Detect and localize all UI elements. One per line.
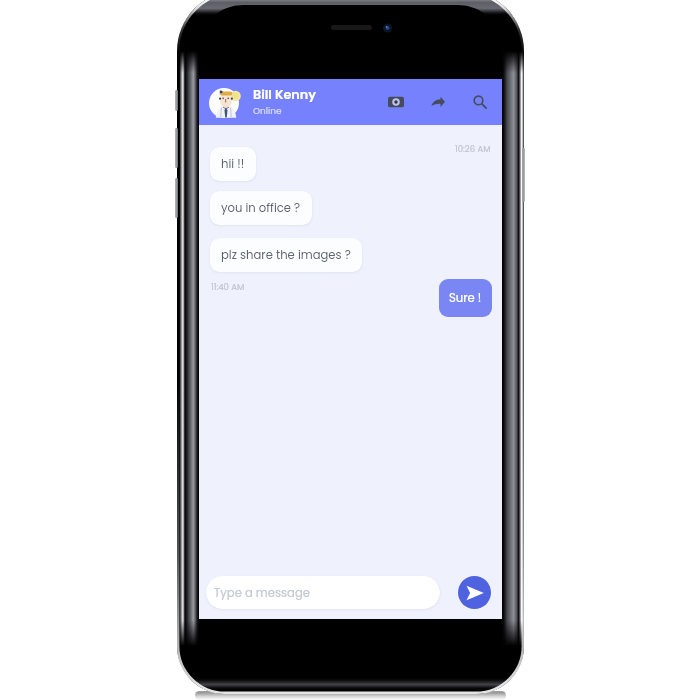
- button[interactable]: you in office ?: [210, 191, 312, 225]
- button[interactable]: hii !!: [210, 147, 256, 181]
- staticText: you in office ?: [221, 200, 301, 216]
- staticText: Online: [253, 105, 282, 118]
- button[interactable]: Profile photo: [209, 88, 243, 122]
- staticText: Bill Kenny: [253, 86, 316, 104]
- staticText: 11:40 AM: [211, 281, 245, 293]
- button[interactable]: Camera: [384, 90, 408, 114]
- staticText: Sure !: [449, 290, 482, 306]
- button[interactable]: Send: [458, 576, 491, 609]
- button[interactable]: Type a message: [206, 576, 440, 609]
- button[interactable]: Search: [468, 90, 492, 114]
- staticText: Type a message: [214, 585, 310, 601]
- button[interactable]: plz share the images ?: [210, 238, 362, 272]
- button[interactable]: Sure !: [439, 279, 492, 317]
- staticText: 10:26 AM: [455, 143, 491, 155]
- staticText: plz share the images ?: [221, 247, 351, 263]
- staticText: hii !!: [221, 156, 245, 172]
- button[interactable]: Share: [426, 90, 450, 114]
